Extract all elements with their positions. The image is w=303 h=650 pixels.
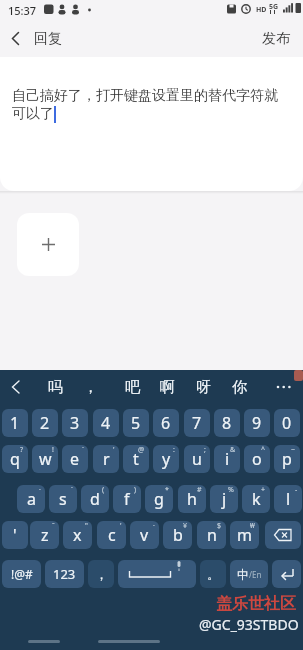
staticText: ' bbox=[120, 521, 122, 531]
button[interactable] bbox=[276, 385, 292, 389]
button[interactable]: - bbox=[274, 485, 302, 513]
staticText: @ bbox=[138, 445, 145, 455]
staticText: i bbox=[225, 448, 230, 470]
button[interactable]: 5 bbox=[123, 409, 149, 437]
staticText: 。 bbox=[207, 566, 220, 582]
button[interactable]: 6 bbox=[153, 409, 179, 437]
staticText: v bbox=[140, 524, 149, 546]
button[interactable]: " bbox=[63, 521, 92, 549]
staticText: @GC_93STBDO bbox=[199, 615, 299, 634]
button[interactable]: 啊 bbox=[156, 377, 178, 397]
staticText: · bbox=[153, 521, 155, 531]
button[interactable]: ， bbox=[79, 377, 101, 397]
button[interactable]: ， bbox=[88, 560, 114, 588]
button[interactable]: ' bbox=[2, 521, 28, 549]
button[interactable] bbox=[265, 521, 301, 549]
button[interactable]: % bbox=[210, 485, 238, 513]
staticText: 呀 bbox=[196, 378, 211, 397]
staticText: ， bbox=[95, 566, 108, 582]
staticText: ' bbox=[113, 445, 115, 455]
button[interactable]: · bbox=[17, 485, 45, 513]
button[interactable]: 8 bbox=[214, 409, 240, 437]
staticText: ' bbox=[13, 524, 17, 546]
button[interactable]: 1 bbox=[2, 409, 28, 437]
staticText: w bbox=[39, 448, 52, 470]
staticText: e bbox=[70, 448, 80, 470]
button[interactable]: 9 bbox=[244, 409, 270, 437]
staticText: ˉ bbox=[52, 521, 55, 531]
button[interactable]: 2 bbox=[32, 409, 58, 437]
button[interactable]: + bbox=[242, 485, 270, 513]
staticText: ´ bbox=[71, 485, 73, 495]
button[interactable]: 0 bbox=[274, 409, 300, 437]
button[interactable]: 呀 bbox=[192, 377, 214, 397]
staticText: # bbox=[197, 485, 202, 495]
button[interactable]: 123 bbox=[45, 560, 84, 588]
button[interactable]: ; bbox=[184, 445, 210, 473]
staticText: f bbox=[124, 488, 130, 510]
button[interactable]: ' bbox=[93, 445, 119, 473]
button[interactable]: # bbox=[178, 485, 206, 513]
button[interactable]: @ bbox=[123, 445, 149, 473]
button[interactable]: 中 bbox=[230, 560, 268, 588]
button[interactable]: ? bbox=[2, 445, 28, 473]
button[interactable]: : bbox=[153, 445, 179, 473]
button[interactable]: & bbox=[214, 445, 240, 473]
staticText: ~ bbox=[291, 445, 296, 455]
button[interactable] bbox=[272, 560, 301, 588]
staticText: t bbox=[133, 448, 139, 470]
staticText: l bbox=[286, 488, 291, 510]
staticText: d bbox=[90, 488, 100, 510]
staticText: ? bbox=[20, 445, 24, 455]
button[interactable]: 你 bbox=[228, 377, 250, 397]
button[interactable]: 回复 bbox=[6, 20, 62, 57]
staticText: k bbox=[252, 488, 261, 510]
button[interactable]: 。 bbox=[200, 560, 226, 588]
button[interactable]: ) bbox=[113, 485, 141, 513]
button[interactable]: · bbox=[130, 521, 159, 549]
staticText: j bbox=[222, 488, 227, 510]
button[interactable]: ^ bbox=[244, 445, 270, 473]
staticText: 0 bbox=[282, 412, 292, 434]
staticText: 5G bbox=[269, 2, 279, 12]
button[interactable]: ˉ bbox=[30, 521, 59, 549]
button[interactable] bbox=[17, 213, 79, 276]
staticText: ; bbox=[204, 445, 206, 455]
button[interactable]: $ bbox=[197, 521, 226, 549]
staticText: r bbox=[103, 448, 110, 470]
staticText: 9 bbox=[252, 412, 262, 434]
button[interactable]: 自己搞好了，打开键盘设置里的替代字符就 bbox=[0, 57, 303, 191]
staticText: 吗 bbox=[48, 378, 63, 397]
button[interactable]: 吗 bbox=[44, 377, 66, 397]
staticText: 自己搞好了，打开键盘设置里的替代字符就 bbox=[12, 87, 278, 105]
button[interactable]: !@# bbox=[2, 560, 41, 588]
button[interactable]: 3 bbox=[62, 409, 88, 437]
staticText: q bbox=[10, 448, 20, 470]
staticText: 吧 bbox=[125, 378, 140, 397]
button[interactable]: ` bbox=[62, 445, 88, 473]
button[interactable]: ₩ bbox=[230, 521, 259, 549]
button[interactable]: ~ bbox=[274, 445, 300, 473]
staticText: ₩ bbox=[250, 521, 255, 531]
staticText: ^ bbox=[261, 445, 266, 455]
button[interactable]: 发布 bbox=[262, 30, 290, 48]
button[interactable]: ! bbox=[32, 445, 58, 473]
button[interactable]: 吧 bbox=[121, 377, 143, 397]
button[interactable]: * bbox=[145, 485, 173, 513]
staticText: n bbox=[207, 524, 217, 546]
staticText: 15:37 bbox=[8, 3, 37, 18]
button[interactable]: ' bbox=[97, 521, 126, 549]
staticText: y bbox=[162, 448, 171, 470]
button[interactable] bbox=[11, 381, 20, 393]
button[interactable]: 7 bbox=[184, 409, 210, 437]
staticText: 8 bbox=[222, 412, 232, 434]
staticText: !@# bbox=[11, 566, 33, 582]
button[interactable]: 4 bbox=[93, 409, 119, 437]
staticText: 2 bbox=[40, 412, 50, 434]
button[interactable]: ( bbox=[81, 485, 109, 513]
staticText: : bbox=[173, 445, 175, 455]
button[interactable]: ¥ bbox=[163, 521, 192, 549]
button[interactable]: ´ bbox=[49, 485, 77, 513]
staticText: z bbox=[41, 524, 49, 546]
button[interactable] bbox=[118, 560, 196, 588]
